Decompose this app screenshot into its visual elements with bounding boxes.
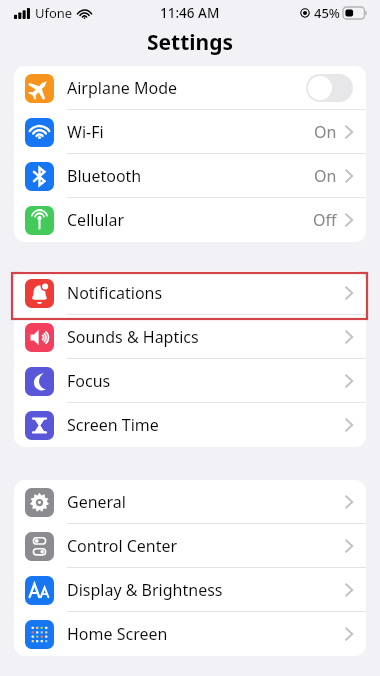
staticText: General [67, 491, 126, 513]
button[interactable]: Home Screen [14, 612, 366, 656]
staticText: Off [313, 209, 337, 231]
staticText: Control Center [67, 535, 178, 557]
button[interactable]: Focus [14, 359, 366, 403]
staticText: 11:46 AM [160, 4, 220, 22]
button[interactable]: Screen Time [14, 403, 366, 447]
staticText: Home Screen [67, 623, 168, 645]
button[interactable]: Cellular [14, 198, 366, 242]
button[interactable]: General [14, 480, 366, 524]
staticText: Notifications [67, 282, 163, 304]
staticText: Airplane Mode [67, 77, 178, 99]
staticText: Bluetooth [67, 165, 142, 187]
button[interactable]: Control Center [14, 524, 366, 568]
staticText: Cellular [67, 209, 124, 231]
button[interactable]: Notifications [14, 271, 366, 315]
staticText: Wi-Fi [67, 121, 104, 143]
staticText: Sounds & Haptics [67, 326, 199, 348]
button[interactable]: Airplane Mode [14, 66, 366, 110]
staticText: On [314, 121, 337, 143]
button[interactable]: Bluetooth [14, 154, 366, 198]
staticText: On [314, 165, 337, 187]
staticText: Settings [147, 28, 234, 57]
staticText: Focus [67, 370, 111, 392]
button[interactable]: Airplane Mode toggle, off [306, 74, 353, 102]
staticText: Screen Time [67, 414, 159, 436]
staticText: Ufone [35, 4, 73, 22]
button[interactable]: Sounds & Haptics [14, 315, 366, 359]
staticText: 45% [314, 4, 340, 22]
staticText: Display & Brightness [67, 579, 223, 601]
button[interactable]: Display & Brightness [14, 568, 366, 612]
button[interactable]: Wi-Fi [14, 110, 366, 154]
